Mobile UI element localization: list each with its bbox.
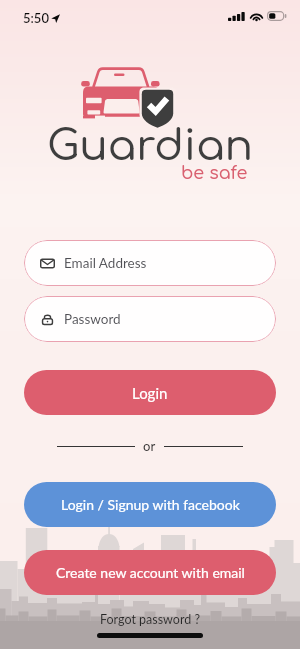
staticText: Forgot password ?: [100, 612, 201, 627]
button[interactable]: Login / Signup with facebook: [24, 482, 276, 527]
staticText: Password: [64, 311, 121, 327]
button[interactable]: Login: [24, 370, 276, 415]
staticText: Guardian: [0, 123, 300, 170]
button[interactable]: Forgot password ?: [90, 609, 211, 630]
staticText: 5:50: [23, 10, 49, 26]
button[interactable]: Email Address: [24, 240, 276, 286]
staticText: Login: [132, 384, 168, 402]
button[interactable]: Create new account with email: [24, 550, 276, 595]
staticText: be safe: [181, 164, 248, 184]
button[interactable]: Password: [24, 296, 276, 342]
staticText: Login / Signup with facebook: [61, 496, 240, 513]
staticText: Email Address: [64, 255, 147, 271]
staticText: or: [143, 438, 156, 454]
staticText: Create new account with email: [56, 564, 245, 581]
